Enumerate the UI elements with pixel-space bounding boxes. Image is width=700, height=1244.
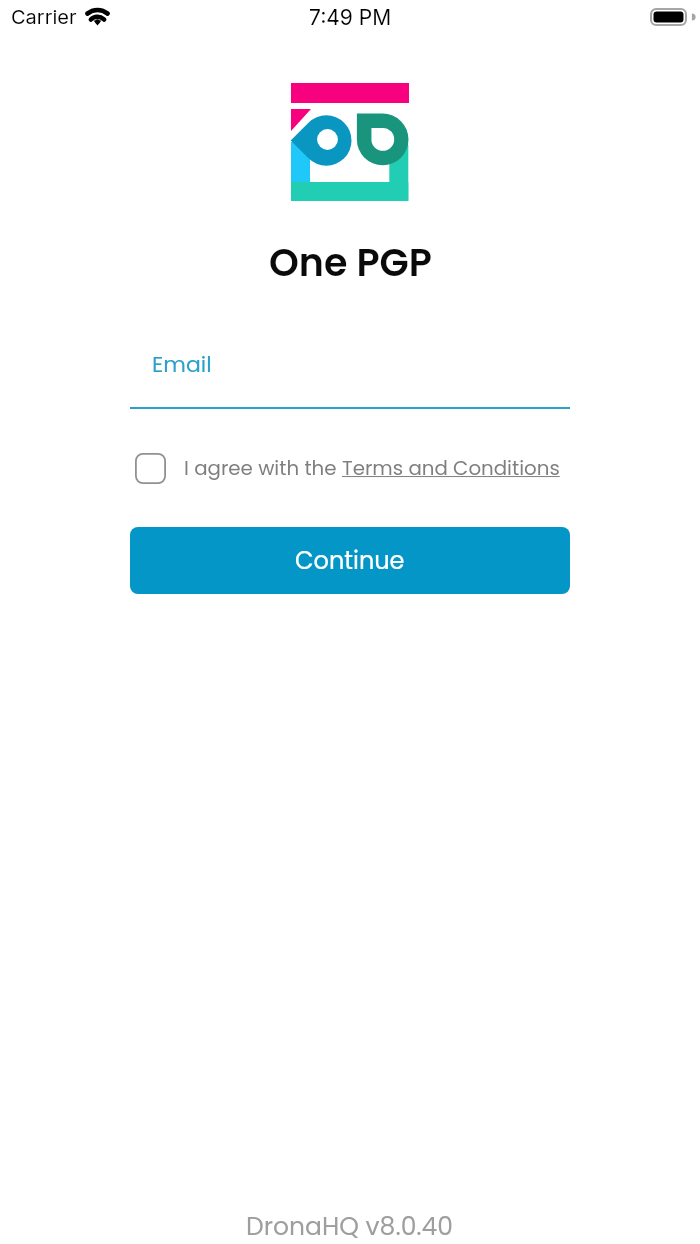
button[interactable]: Email — [130, 338, 570, 409]
staticText: Continue — [295, 544, 405, 578]
button[interactable]: Terms and Conditions — [342, 454, 560, 482]
staticText: Carrier — [11, 5, 77, 29]
staticText: DronaHQ v8.0.40 — [246, 1209, 454, 1244]
staticText: Email — [152, 349, 212, 380]
staticText: One PGP — [269, 236, 432, 289]
staticText: 7:49 PM — [309, 5, 392, 30]
button[interactable]: Continue — [130, 527, 570, 594]
button[interactable]: Agree to terms checkbox — [135, 453, 166, 484]
staticText: I agree with the — [184, 454, 342, 482]
